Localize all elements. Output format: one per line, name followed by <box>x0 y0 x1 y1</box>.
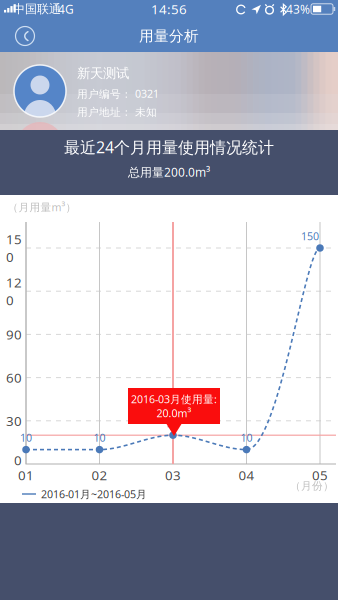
staticText: 总用量200.0m³ <box>128 164 210 180</box>
staticText: 最近24个月用量使用情况统计 <box>64 136 274 158</box>
staticText: 新天测试 <box>77 65 129 82</box>
staticText: 10 <box>20 430 32 445</box>
staticText: 120 <box>6 273 22 309</box>
staticText: 2016-03月使用量: <box>131 392 217 406</box>
staticText: （月用量m³） <box>7 200 76 214</box>
staticText: 中国联通 <box>13 2 61 16</box>
staticText: 10 <box>93 430 105 445</box>
staticText: 0 <box>14 451 22 469</box>
staticText: 04 <box>238 466 254 484</box>
staticText: 30 <box>6 412 22 430</box>
staticText: 2016-01月~2016-05月 <box>41 487 147 501</box>
staticText: 150 <box>301 229 319 243</box>
staticText: 43% <box>286 1 310 17</box>
staticText: 用户编号： 0321 <box>77 87 159 101</box>
staticText: 03 <box>165 466 181 484</box>
staticText: 用户地址： 未知 <box>77 106 157 119</box>
staticText: 20 <box>167 416 179 430</box>
staticText: 05 <box>312 466 328 484</box>
staticText: 150 <box>6 230 22 266</box>
staticText: 4G <box>58 1 74 17</box>
staticText: （月份） <box>290 479 334 492</box>
staticText: 90 <box>6 325 22 343</box>
staticText: 60 <box>6 369 22 386</box>
staticText: 20.0m³ <box>156 406 191 420</box>
staticText: 14:56 <box>151 0 187 18</box>
staticText: 10 <box>240 430 252 445</box>
staticText: 02 <box>91 466 107 484</box>
button[interactable]: Back <box>3 20 47 52</box>
staticText: 01 <box>18 466 34 484</box>
staticText: 用量分析 <box>139 27 199 45</box>
